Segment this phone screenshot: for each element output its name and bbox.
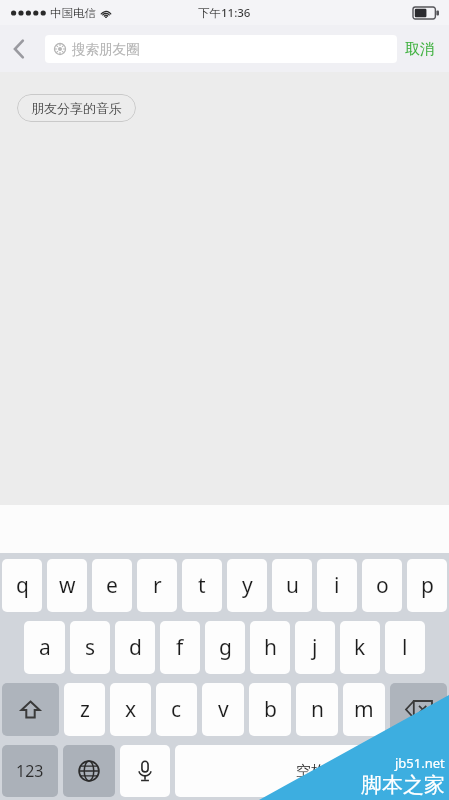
button[interactable]: p xyxy=(407,559,447,612)
button[interactable]: s xyxy=(70,621,110,674)
button[interactable]: g xyxy=(205,621,245,674)
button[interactable]: f xyxy=(160,621,200,674)
button[interactable]: Change keyboard xyxy=(63,745,115,797)
staticText: i xyxy=(334,571,340,600)
button[interactable]: j xyxy=(295,621,335,674)
button[interactable]: w xyxy=(47,559,87,612)
button[interactable]: 空格 xyxy=(175,745,447,797)
staticText: 中国电信 xyxy=(50,6,96,20)
staticText: s xyxy=(85,633,96,662)
button[interactable]: r xyxy=(137,559,177,612)
button[interactable]: 取消 xyxy=(397,27,443,71)
button[interactable]: n xyxy=(296,683,338,736)
staticText: b xyxy=(264,695,277,724)
button[interactable]: x xyxy=(110,683,151,736)
staticText: u xyxy=(286,571,299,600)
button[interactable]: l xyxy=(385,621,425,674)
staticText: w xyxy=(59,571,76,600)
staticText: q xyxy=(16,571,29,600)
button[interactable]: k xyxy=(340,621,380,674)
staticText: m xyxy=(354,695,374,724)
staticText: 搜索朋友圈 xyxy=(72,41,140,58)
staticText: x xyxy=(125,695,137,724)
button[interactable]: b xyxy=(249,683,291,736)
button[interactable]: Back xyxy=(0,27,38,71)
staticText: 下午11:36 xyxy=(198,5,251,21)
button[interactable]: a xyxy=(24,621,65,674)
staticText: r xyxy=(153,571,162,600)
staticText: a xyxy=(39,633,51,662)
staticText: 朋友分享的音乐 xyxy=(31,100,122,116)
button[interactable]: u xyxy=(272,559,312,612)
staticText: 空格 xyxy=(296,762,326,781)
button[interactable]: o xyxy=(362,559,402,612)
staticText: jb51.net xyxy=(395,754,445,772)
staticText: v xyxy=(218,695,229,724)
staticText: 取消 xyxy=(405,40,435,59)
button[interactable]: 朋友分享的音乐 xyxy=(17,94,136,122)
button[interactable]: Voice input xyxy=(120,745,170,797)
button[interactable]: c xyxy=(156,683,197,736)
button[interactable]: Shift xyxy=(2,683,59,736)
button[interactable]: i xyxy=(317,559,357,612)
button[interactable]: Backspace xyxy=(390,683,447,736)
staticText: k xyxy=(354,633,366,662)
button[interactable]: d xyxy=(115,621,155,674)
button[interactable]: z xyxy=(64,683,105,736)
button[interactable]: v xyxy=(202,683,244,736)
staticText: j xyxy=(312,633,318,662)
staticText: g xyxy=(219,633,232,662)
staticText: 123 xyxy=(16,760,44,782)
staticText: p xyxy=(421,571,434,600)
staticText: l xyxy=(402,633,408,662)
staticText: f xyxy=(176,633,184,662)
staticText: h xyxy=(264,633,277,662)
staticText: e xyxy=(106,571,118,600)
staticText: o xyxy=(376,571,389,600)
button[interactable]: 123 xyxy=(2,745,58,797)
staticText: d xyxy=(129,633,142,662)
button[interactable]: q xyxy=(2,559,42,612)
button[interactable]: t xyxy=(182,559,222,612)
staticText: n xyxy=(311,695,324,724)
staticText: z xyxy=(80,695,90,724)
staticText: y xyxy=(242,571,253,600)
button[interactable]: 搜索朋友圈 xyxy=(45,35,397,63)
staticText: t xyxy=(198,571,206,600)
staticText: 脚本之家 xyxy=(361,772,445,798)
staticText: c xyxy=(171,695,182,724)
button[interactable]: h xyxy=(250,621,290,674)
button[interactable]: m xyxy=(343,683,385,736)
button[interactable]: y xyxy=(227,559,267,612)
button[interactable]: e xyxy=(92,559,132,612)
